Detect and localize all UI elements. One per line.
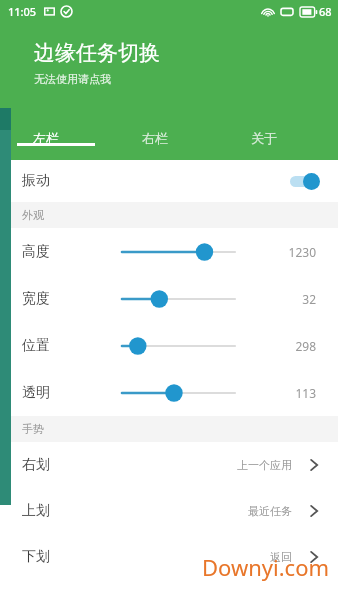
- staticText: 返回: [270, 550, 292, 564]
- other: 打开 右划 设置: [306, 457, 322, 473]
- staticText: 高度: [22, 243, 122, 261]
- staticText: 手势: [22, 422, 44, 436]
- button[interactable]: 左栏: [11, 124, 120, 146]
- staticText: 右栏: [142, 130, 168, 146]
- other: 打开 上划 设置: [306, 503, 322, 519]
- staticText: 下划: [22, 548, 50, 566]
- button[interactable]: 上划: [0, 488, 338, 534]
- button[interactable]: 宽度: [0, 275, 338, 322]
- staticText: 113: [278, 385, 316, 401]
- staticText: 1230: [278, 244, 316, 260]
- staticText: 68: [319, 4, 332, 19]
- staticText: 透明: [22, 384, 122, 402]
- staticText: 左栏: [33, 130, 59, 146]
- staticText: 11:05: [8, 4, 37, 19]
- button[interactable]: 下划: [0, 534, 338, 580]
- staticText: 位置: [22, 337, 122, 355]
- staticText: 上划: [22, 502, 50, 520]
- button[interactable]: 关于: [229, 124, 338, 146]
- button[interactable]: 高度: [0, 228, 338, 275]
- button[interactable]: 振动: [0, 160, 338, 202]
- staticText: 振动: [22, 172, 50, 190]
- staticText: 宽度: [22, 290, 122, 308]
- button[interactable]: 透明: [0, 369, 338, 416]
- staticText: 上一个应用: [237, 458, 292, 472]
- button[interactable]: 位置: [0, 322, 338, 369]
- staticText: 32: [278, 291, 316, 307]
- staticText: 外观: [22, 208, 44, 222]
- staticText: 关于: [251, 130, 277, 146]
- staticText: Downyi.com: [202, 552, 330, 582]
- staticText: 右划: [22, 456, 50, 474]
- staticText: 最近任务: [248, 504, 292, 518]
- other: 打开 下划 设置: [306, 549, 322, 565]
- button[interactable]: 右划: [0, 442, 338, 488]
- button[interactable]: 右栏: [120, 124, 229, 146]
- staticText: 边缘任务切换: [34, 40, 160, 66]
- staticText: 298: [278, 338, 316, 354]
- button[interactable]: 无法使用请点我: [34, 72, 111, 86]
